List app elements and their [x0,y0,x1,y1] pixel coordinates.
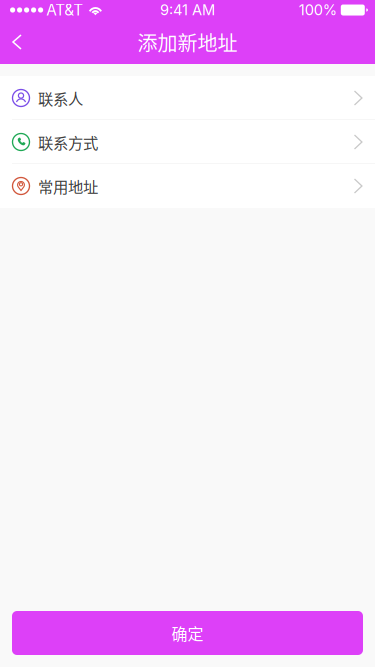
button[interactable]: 联系人 [0,76,375,120]
staticText: 联系方式 [38,131,98,153]
button[interactable]: 常用地址 [0,164,375,208]
staticText: 联系人 [38,87,83,109]
staticText: 9:41 AM [160,1,215,19]
button[interactable]: 确定 [12,611,363,655]
staticText: 100% [299,1,337,19]
staticText: 常用地址 [38,175,98,197]
staticText: AT&T [46,1,83,19]
button[interactable]: 联系方式 [0,120,375,164]
button[interactable]: Back [0,20,34,64]
staticText: 确定 [171,621,203,645]
staticText: 添加新地址 [137,27,237,56]
